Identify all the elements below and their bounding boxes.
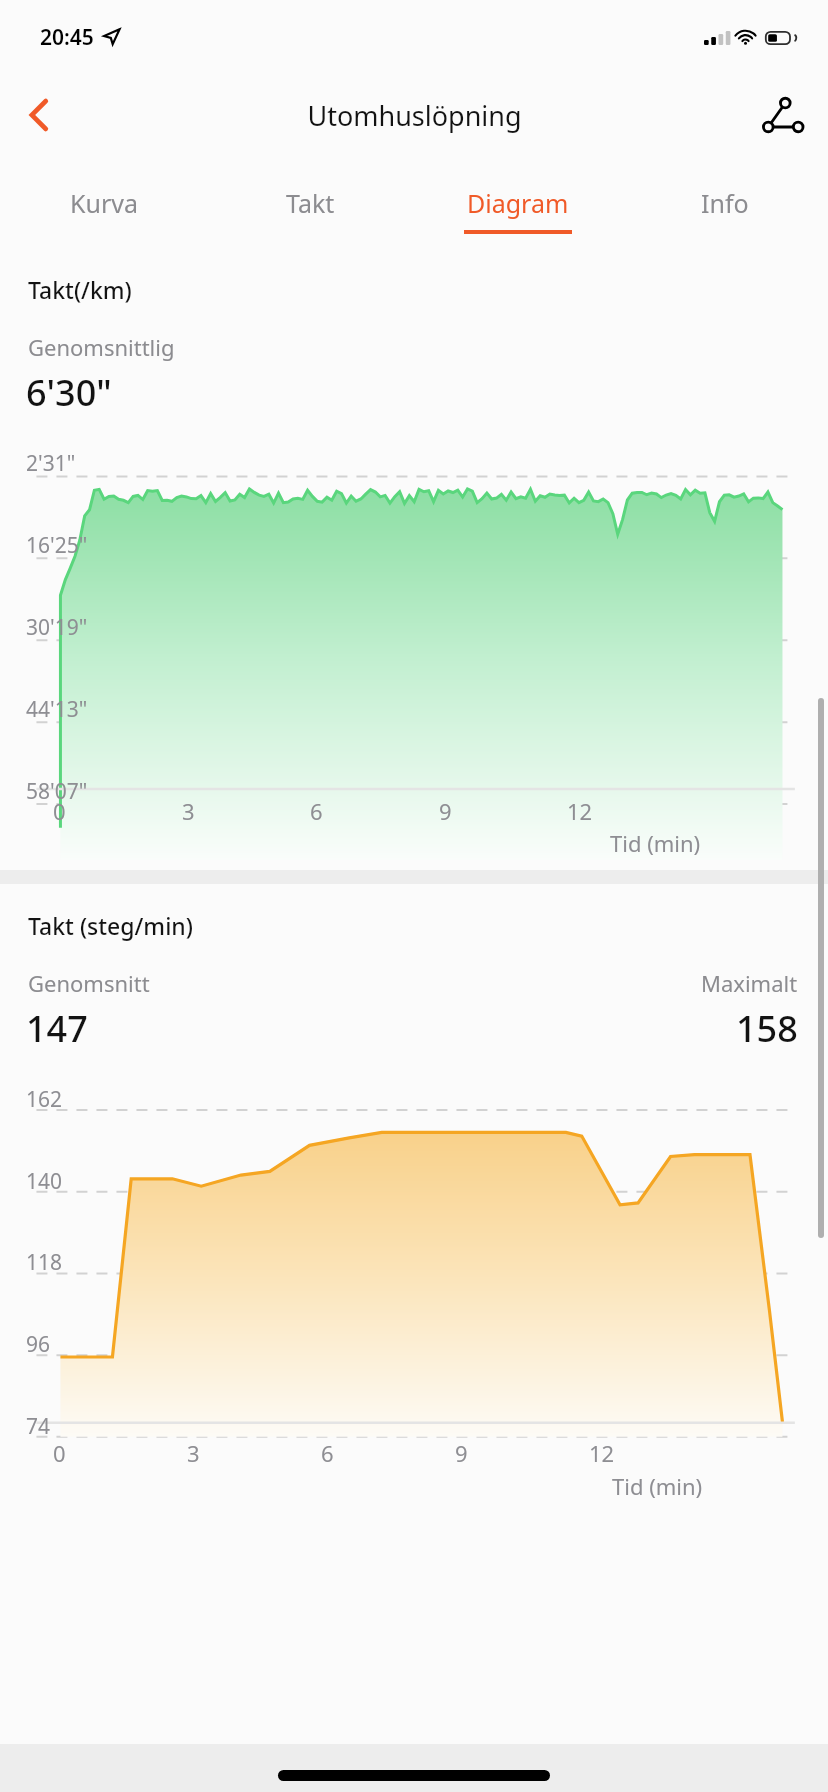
staticText: 6 <box>321 1438 334 1468</box>
button[interactable]: Diagram <box>414 160 621 250</box>
button[interactable]: Takt <box>207 160 414 250</box>
staticText: 162 <box>26 1085 63 1114</box>
staticText: 3 <box>187 1438 200 1468</box>
staticText: Info <box>701 186 749 220</box>
staticText: 6 <box>310 796 323 826</box>
staticText: Takt (steg/min) <box>28 910 193 941</box>
staticText: Maximalt <box>701 968 798 998</box>
staticText: 30'19" <box>26 613 88 642</box>
staticText: 12 <box>567 796 593 826</box>
staticText: 118 <box>26 1248 63 1277</box>
staticText: 147 <box>26 1004 88 1053</box>
staticText: Genomsnitt <box>28 968 150 998</box>
button[interactable]: Share route <box>738 70 828 160</box>
staticText: 2'31" <box>26 449 76 478</box>
staticText: Tid (min) <box>610 828 701 858</box>
staticText: 58'07" <box>26 777 88 806</box>
staticText: Utomhuslöpning <box>307 97 522 134</box>
button[interactable]: Info <box>621 160 828 250</box>
staticText: Diagram <box>467 186 569 220</box>
staticText: 12 <box>589 1438 615 1468</box>
staticText: 6'30" <box>26 368 112 417</box>
staticText: 16'25" <box>26 531 88 560</box>
staticText: 140 <box>26 1167 63 1196</box>
staticText: 9 <box>439 796 452 826</box>
staticText: Genomsnittlig <box>28 332 175 362</box>
button[interactable]: Kurva <box>0 160 207 250</box>
staticText: Takt(/km) <box>28 274 132 305</box>
staticText: Takt <box>286 186 335 220</box>
staticText: 0 <box>53 796 66 826</box>
staticText: 74 <box>26 1412 51 1441</box>
staticText: Kurva <box>70 186 138 220</box>
staticText: 9 <box>455 1438 468 1468</box>
staticText: 3 <box>182 796 195 826</box>
staticText: 44'13" <box>26 695 88 724</box>
staticText: 0 <box>53 1438 66 1468</box>
staticText: Tid (min) <box>612 1471 703 1501</box>
staticText: 96 <box>26 1330 51 1359</box>
staticText: 158 <box>736 1004 798 1053</box>
button[interactable]: Back <box>0 70 78 160</box>
staticText: 20:45 <box>40 23 94 52</box>
